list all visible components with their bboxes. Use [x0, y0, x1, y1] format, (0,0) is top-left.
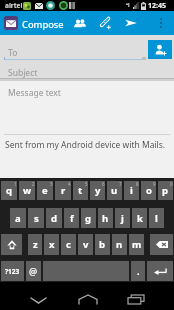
staticText: y: [95, 184, 101, 197]
button[interactable]: a: [10, 208, 26, 228]
staticText: Compose: [22, 18, 64, 31]
button[interactable]: Backspace: [150, 234, 173, 255]
button[interactable]: c: [61, 234, 76, 255]
button[interactable]: y: [90, 181, 105, 200]
button[interactable]: j: [115, 208, 130, 228]
button[interactable]: t: [73, 181, 88, 200]
staticText: k: [137, 212, 143, 225]
button[interactable]: x: [44, 234, 59, 255]
staticText: v: [83, 238, 89, 251]
staticText: Message text: [8, 87, 61, 99]
button[interactable]: Mails: [4, 16, 18, 30]
staticText: i: [130, 184, 133, 197]
button[interactable]: More options: [150, 11, 171, 35]
button[interactable]: Recent apps: [122, 282, 150, 310]
staticText: o: [146, 184, 152, 197]
staticText: Subject: [8, 67, 38, 79]
staticText: q: [6, 184, 13, 197]
button[interactable]: r: [55, 181, 71, 200]
staticText: .: [137, 265, 140, 277]
button[interactable]: s: [28, 208, 44, 228]
staticText: x: [49, 238, 55, 251]
button[interactable]: u: [107, 181, 122, 200]
staticText: 8: [136, 181, 139, 187]
staticText: ?123: [5, 267, 20, 276]
button[interactable]: o: [141, 181, 156, 200]
staticText: 4: [68, 181, 71, 187]
staticText: l: [155, 212, 158, 225]
staticText: 6: [102, 181, 105, 187]
staticText: u: [111, 184, 118, 197]
button[interactable]: Shift: [1, 234, 22, 255]
button[interactable]: p: [158, 181, 173, 200]
staticText: 9: [153, 181, 156, 187]
button[interactable]: .: [131, 261, 145, 281]
button[interactable]: g: [81, 208, 96, 228]
staticText: 2: [32, 181, 35, 187]
staticText: d: [51, 212, 58, 225]
staticText: c: [66, 238, 71, 251]
button[interactable]: ?123: [1, 261, 24, 281]
button[interactable]: m: [129, 234, 144, 255]
staticText: e: [42, 184, 48, 197]
staticText: h: [102, 212, 109, 225]
staticText: 3: [50, 181, 53, 187]
staticText: m: [132, 238, 142, 251]
button[interactable]: n: [112, 234, 127, 255]
staticText: Sent from my Android device with Mails.: [5, 139, 166, 151]
staticText: j: [121, 212, 124, 225]
button[interactable]: f: [64, 208, 79, 228]
button[interactable]: Enter: [147, 261, 173, 281]
button[interactable]: Attach file: [93, 11, 117, 35]
button[interactable]: Send: [119, 11, 143, 35]
button[interactable]: h: [98, 208, 113, 228]
button[interactable]: @: [26, 261, 41, 281]
staticText: g: [85, 212, 92, 225]
staticText: z: [33, 238, 38, 251]
button[interactable]: v: [78, 234, 93, 255]
staticText: 12:45: [148, 1, 166, 11]
button[interactable]: d: [46, 208, 62, 228]
staticText: b: [99, 238, 106, 251]
staticText: To: [8, 47, 18, 59]
button[interactable]: w: [19, 181, 35, 200]
staticText: f: [70, 212, 74, 225]
button[interactable]: Home: [74, 282, 102, 310]
button[interactable]: Pick contact: [148, 40, 172, 59]
button[interactable]: Back: [24, 282, 52, 310]
button[interactable]: k: [132, 208, 147, 228]
staticText: n: [116, 238, 123, 251]
staticText: w: [23, 184, 32, 197]
staticText: 7: [119, 181, 122, 187]
staticText: airtel: [5, 1, 23, 10]
staticText: t: [78, 184, 83, 197]
staticText: 5: [85, 181, 88, 187]
button[interactable]: q: [1, 181, 17, 200]
button[interactable]: Add recipients: [68, 11, 92, 35]
button[interactable]: l: [149, 208, 164, 228]
button[interactable]: z: [28, 234, 42, 255]
staticText: r: [61, 184, 66, 197]
staticText: p: [162, 184, 169, 197]
staticText: a: [15, 212, 21, 225]
button[interactable]: e: [37, 181, 53, 200]
staticText: s: [34, 212, 39, 225]
staticText: 0: [170, 181, 173, 187]
button[interactable]: i: [124, 181, 139, 200]
staticText: @: [29, 265, 38, 277]
button[interactable]: b: [95, 234, 110, 255]
staticText: 1: [14, 181, 17, 187]
